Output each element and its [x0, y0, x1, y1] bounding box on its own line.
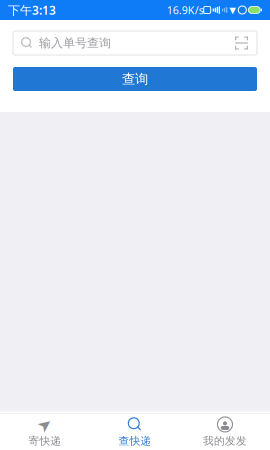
staticText: 查询: [122, 71, 148, 87]
staticText: 输入单号查询: [39, 36, 111, 50]
staticText: ➤: [37, 415, 52, 434]
button[interactable]: 输入单号查询: [13, 31, 257, 55]
staticText: 查快递: [118, 434, 151, 447]
button[interactable]: 查询: [13, 67, 257, 91]
staticText: 寄快递: [28, 434, 61, 447]
staticText: 16.9K/s: [167, 3, 204, 17]
staticText: 我的发发: [203, 434, 247, 447]
button[interactable]: 查快递: [90, 411, 180, 450]
staticText: ▾: [229, 2, 236, 17]
button[interactable]: 我的发发: [180, 411, 270, 450]
button[interactable]: ➤: [0, 411, 90, 450]
staticText: 下午3:13: [8, 2, 56, 18]
